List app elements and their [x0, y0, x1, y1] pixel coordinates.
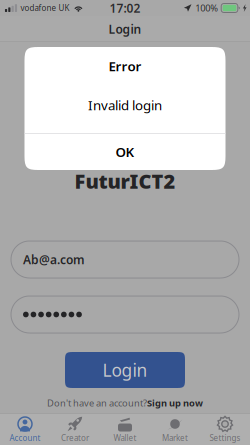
staticText: 100%	[195, 2, 218, 14]
button[interactable]: Wallet	[100, 413, 150, 445]
staticText: Sign up now	[147, 397, 203, 409]
staticText: Don't have an account?	[47, 397, 147, 409]
staticText: Login	[102, 358, 147, 381]
button[interactable]: Account	[0, 413, 50, 445]
staticText: 17:02	[109, 0, 140, 16]
button[interactable]: Creator	[50, 413, 100, 445]
staticText: OK	[115, 143, 134, 161]
button[interactable]: Don't have an account?	[47, 396, 203, 410]
staticText: Invalid login	[88, 96, 162, 114]
staticText: Account	[9, 433, 40, 443]
staticText: Wallet	[113, 433, 136, 443]
button[interactable]: OK	[24, 134, 225, 170]
staticText: Settings	[209, 433, 240, 443]
button[interactable]: Market	[150, 413, 200, 445]
staticText: FuturICT2	[74, 168, 175, 194]
staticText: Error	[108, 57, 141, 75]
staticText: vodafone UK	[20, 3, 69, 13]
staticText: Market	[162, 433, 188, 443]
staticText: Login	[108, 21, 141, 37]
button[interactable]: Settings	[200, 413, 250, 445]
staticText: Creator	[61, 433, 89, 443]
button[interactable]: Login	[65, 352, 185, 388]
staticText: Ab@a.com	[23, 251, 85, 267]
